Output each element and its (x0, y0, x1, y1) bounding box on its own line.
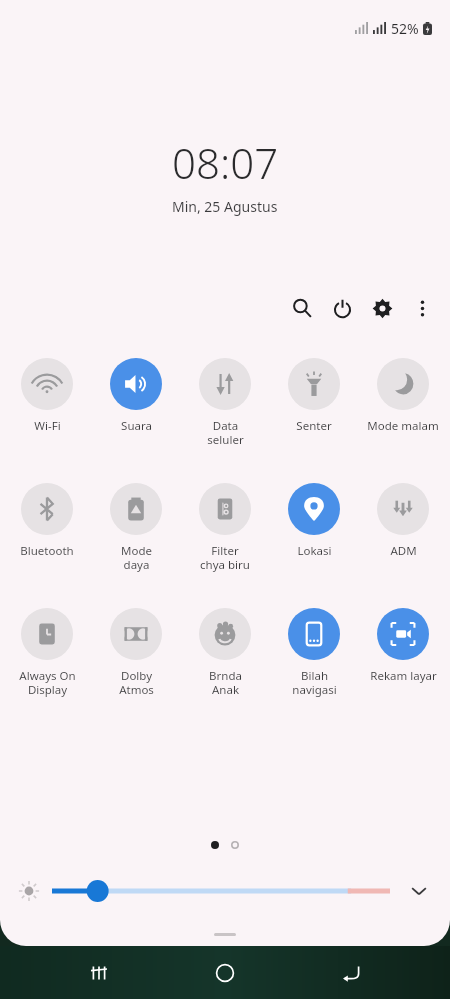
button[interactable]: Settings (362, 288, 402, 328)
staticText: Min, 25 Agustus (172, 197, 278, 216)
staticText: Lokasi (297, 543, 332, 559)
staticText: Filter chya biru (200, 543, 250, 572)
button[interactable]: Search (282, 288, 322, 328)
button[interactable]: Back (324, 946, 378, 999)
button[interactable]: Expand (400, 872, 438, 910)
button[interactable]: Rekam layar (360, 608, 446, 684)
button[interactable]: ADM (360, 483, 446, 559)
staticText: Suara (121, 418, 152, 434)
button[interactable]: Home (198, 946, 252, 999)
staticText: Brnda Anak (209, 668, 242, 697)
button[interactable]: Bilah navigasi (271, 608, 357, 697)
staticText: Data seluler (207, 418, 244, 447)
button[interactable]: Data seluler (182, 358, 268, 447)
staticText: Senter (296, 418, 332, 434)
button[interactable]: Lokasi (271, 483, 357, 559)
button[interactable]: Wi-Fi (4, 358, 90, 434)
staticText: Dolby Atmos (119, 668, 154, 697)
button[interactable]: Power (322, 288, 362, 328)
staticText: Wi-Fi (34, 418, 61, 434)
staticText: 08:07 (172, 134, 279, 191)
staticText: Mode daya (121, 543, 152, 572)
button[interactable]: Senter (271, 358, 357, 434)
staticText: Always On Display (19, 668, 76, 697)
staticText: 52% (391, 19, 419, 38)
button[interactable]: Always On Display (4, 608, 90, 697)
button[interactable]: More options (402, 288, 442, 328)
staticText: Bluetooth (20, 543, 74, 559)
button[interactable]: Filter chya biru (182, 483, 268, 572)
button[interactable] (52, 876, 390, 906)
button[interactable]: Mode daya (93, 483, 179, 572)
button[interactable]: Mode malam (360, 358, 446, 434)
button[interactable]: Suara (93, 358, 179, 434)
button[interactable]: Dolby Atmos (93, 608, 179, 697)
staticText: Bilah navigasi (292, 668, 337, 697)
staticText: ADM (390, 543, 417, 559)
button[interactable]: Brnda Anak (182, 608, 268, 697)
staticText: Rekam layar (370, 668, 437, 684)
button[interactable]: Recents (72, 946, 126, 999)
staticText: Mode malam (367, 418, 439, 434)
button[interactable]: Bluetooth (4, 483, 90, 559)
